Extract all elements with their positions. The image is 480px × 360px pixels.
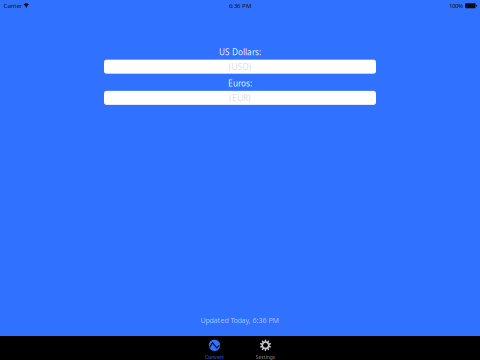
textField[interactable]: (USD) [104,60,376,74]
staticText: US Dollars: [219,46,261,58]
staticText: 6:36 PM [229,2,251,10]
staticText: Updated Today, 6:36 PM [200,315,279,325]
staticText: Euros: [228,78,252,89]
staticText: Settings [255,353,275,360]
textField[interactable]: (EUR) [104,91,376,105]
tab[interactable]: Settings [240,336,291,360]
button[interactable]: Settings [240,336,291,360]
staticText: Convert [205,353,224,360]
button[interactable]: Euros: [104,91,376,105]
staticText: Carrier [3,2,21,10]
tab[interactable]: Convert [189,336,240,360]
staticText: (EUR) [229,92,251,104]
button[interactable]: US Dollars: [104,60,376,74]
staticText: 100% [449,2,463,10]
button[interactable]: Convert [189,336,240,360]
staticText: (USD) [228,61,251,72]
